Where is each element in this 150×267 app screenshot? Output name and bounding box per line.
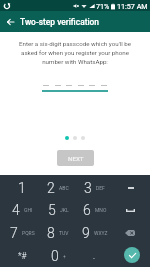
button[interactable]: 9 [76, 221, 113, 244]
button[interactable]: 8 [40, 221, 76, 244]
staticText: NEXT [68, 155, 84, 162]
button[interactable]: . [76, 244, 113, 267]
button[interactable]: 3 [76, 177, 113, 199]
button[interactable]: ok [113, 244, 150, 267]
staticText: 0 [51, 248, 59, 264]
staticText: 9 [82, 225, 90, 241]
staticText: *# [18, 251, 27, 261]
button[interactable]: 5 [40, 199, 76, 221]
button[interactable]: space [113, 199, 150, 221]
staticText: + [63, 253, 66, 259]
button[interactable]: 7 [4, 221, 40, 244]
button[interactable]: NEXT [57, 150, 94, 166]
button[interactable]: Back [0, 11, 20, 32]
staticText: 8 [47, 225, 55, 241]
staticText: . [93, 251, 96, 261]
button[interactable]: 0 [40, 244, 76, 267]
staticText: 1 [18, 180, 26, 196]
staticText: 71% [96, 2, 110, 10]
button[interactable]: 6 [76, 199, 113, 221]
staticText: 11:57 AM [117, 2, 148, 10]
button[interactable]: backspace [113, 221, 150, 244]
staticText: 4 [12, 202, 20, 218]
button[interactable]: 1 [4, 177, 40, 199]
staticText: JKL [60, 207, 69, 213]
staticText: GHI [24, 207, 33, 213]
staticText: 2 [47, 180, 55, 196]
staticText: TUV [59, 230, 69, 236]
staticText: DEF [96, 185, 105, 191]
staticText: Enter a six-digit passcode which you'll … [13, 40, 137, 66]
staticText: WXYZ [94, 230, 108, 236]
staticText: 3 [84, 180, 92, 196]
staticText: ABC [59, 185, 69, 191]
staticText: PQRS [22, 230, 35, 236]
button[interactable]: dash [113, 177, 150, 199]
staticText: 6 [83, 202, 91, 218]
staticText: 5 [48, 202, 56, 218]
staticText: Two-step verification [20, 17, 100, 27]
staticText: 7 [10, 225, 18, 241]
button[interactable]: *# [4, 244, 40, 267]
button[interactable]: 4 [4, 199, 40, 221]
button[interactable]: 2 [40, 177, 76, 199]
staticText: MNO [95, 207, 107, 213]
